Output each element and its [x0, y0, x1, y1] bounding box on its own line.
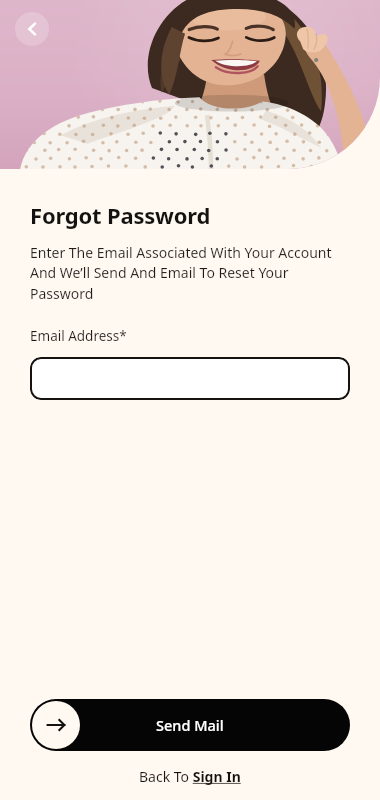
- staticText: Send Mail: [156, 715, 224, 735]
- staticText: Enter The Email Associated With Your Acc…: [30, 243, 350, 304]
- staticText: Email Address*: [30, 327, 127, 345]
- button[interactable]: [30, 357, 350, 400]
- staticText: Back To Sign In: [139, 767, 241, 786]
- button[interactable]: Back: [15, 12, 49, 46]
- button[interactable]: Send Mail: [30, 699, 350, 751]
- button[interactable]: Back To Sign In: [139, 767, 241, 786]
- staticText: Forgot Password: [30, 200, 211, 230]
